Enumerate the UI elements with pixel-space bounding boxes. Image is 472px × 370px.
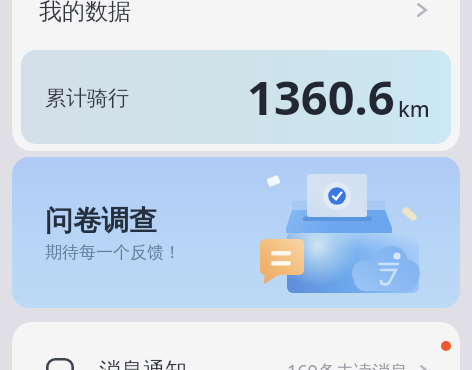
staticText: 消息通知 (99, 357, 187, 370)
button[interactable]: 累计骑行 (21, 50, 451, 144)
staticText: 期待每一个反馈！ (45, 242, 181, 263)
staticText: 1360.6 (247, 65, 395, 129)
button[interactable]: 问卷调查 (12, 157, 460, 308)
button[interactable]: 我的数据 (12, 0, 460, 36)
staticText: km (398, 95, 430, 124)
staticText: 我的数据 (39, 0, 131, 26)
staticText: 160条未读消息 (287, 359, 408, 370)
button[interactable]: 消息通知 (12, 322, 460, 370)
staticText: 问卷调查 (45, 203, 157, 238)
other: More (417, 3, 427, 17)
staticText: 累计骑行 (45, 85, 129, 111)
